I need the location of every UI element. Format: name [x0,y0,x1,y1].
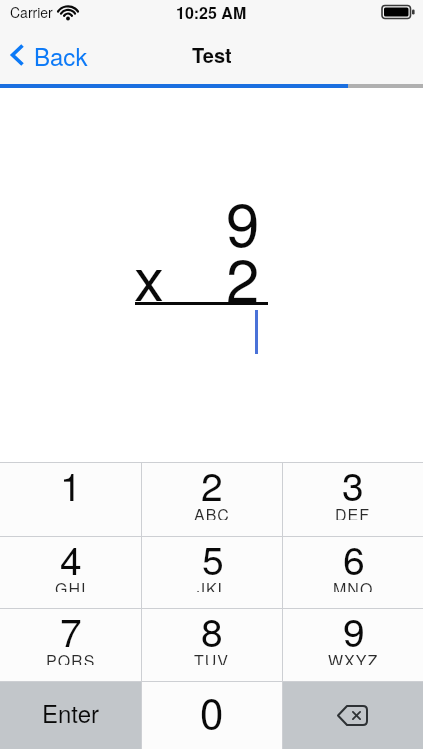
staticText: JKL [197,577,228,592]
staticText: 0 [200,681,224,741]
staticText: Carrier [10,2,53,22]
staticText: MNO [333,577,374,592]
button[interactable]: 1 [0,463,141,536]
button[interactable]: 4 [0,537,141,608]
staticText: WXYZ [328,649,379,665]
button[interactable]: 2 [142,463,282,536]
staticText: Enter [42,695,99,729]
staticText: 2 [226,234,260,314]
button[interactable]: Enter [0,682,141,749]
staticText: GHI [55,577,87,592]
staticText: x [134,232,164,312]
staticText: 4 [60,530,82,586]
staticText: ABC [194,503,230,520]
staticText: 8 [201,602,223,658]
button[interactable]: 6 [283,537,423,608]
staticText: PQRS [46,649,96,665]
staticText: 5 [202,530,224,586]
button[interactable]: 0 [142,682,282,749]
staticText: 10:25 AM [176,1,247,24]
button[interactable]: Back [0,38,88,72]
button[interactable]: 7 [0,609,141,681]
staticText: 2 [201,456,223,512]
staticText: DEF [335,503,371,520]
button[interactable] [283,682,423,749]
staticText: 7 [60,602,82,658]
staticText: Back [34,38,88,72]
button[interactable]: 3 [283,463,423,536]
staticText: TUV [194,649,230,665]
button[interactable]: 8 [142,609,282,681]
button[interactable]: 5 [142,537,282,608]
staticText: 3 [342,456,364,512]
staticText: 6 [343,530,365,586]
staticText: Test [192,40,232,69]
button[interactable]: 9 [283,609,423,681]
staticText: 9 [226,178,260,258]
staticText: 9 [343,602,365,658]
staticText: 1 [60,456,82,512]
